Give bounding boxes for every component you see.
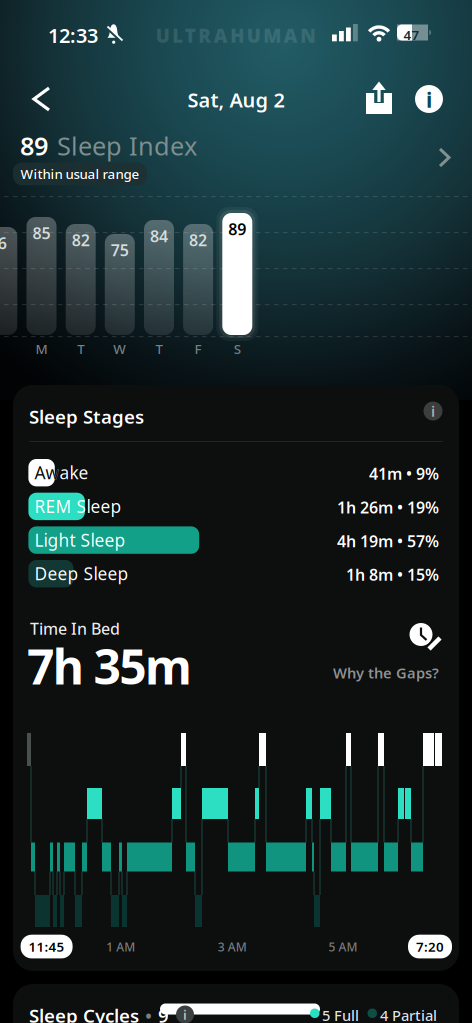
staticText: 82	[72, 229, 90, 251]
staticText: Awake	[34, 461, 88, 484]
staticText: 4h 19m • 57%	[337, 530, 439, 552]
staticText: 1h 26m • 19%	[337, 497, 439, 518]
staticText: 1 AM	[106, 939, 135, 955]
staticText: 9	[158, 1003, 169, 1023]
staticText: S	[234, 340, 241, 358]
staticText: 89	[228, 218, 246, 240]
button[interactable]: i	[415, 85, 443, 113]
staticText: Time In Bed	[30, 618, 120, 639]
staticText: Why the Gaps?	[333, 663, 439, 682]
staticText: Sleep Index	[57, 129, 197, 162]
staticText: M	[35, 340, 47, 358]
staticText: Sleep Stages	[29, 404, 144, 429]
staticText: 11:45	[29, 938, 65, 955]
staticText: 5 Full	[322, 1005, 359, 1023]
staticText: W	[113, 340, 126, 358]
staticText: 6	[0, 232, 7, 254]
staticText: 3 AM	[218, 939, 247, 955]
button[interactable]: i	[423, 401, 442, 420]
staticText: Aw	[34, 461, 59, 484]
staticText: i	[431, 401, 435, 421]
staticText: 82	[189, 229, 207, 251]
staticText: 85	[32, 222, 50, 244]
staticText: T	[155, 340, 162, 358]
button[interactable]	[16, 77, 60, 121]
staticText: 7h 35m	[27, 634, 192, 698]
staticText: i	[426, 85, 432, 114]
button[interactable]: 89	[0, 127, 472, 189]
staticText: 1h 8m • 15%	[346, 564, 439, 585]
staticText: 7:20	[416, 938, 444, 955]
staticText: 75	[111, 239, 129, 261]
staticText: 84	[150, 225, 168, 247]
staticText: 89	[20, 129, 48, 162]
staticText: Within usual range	[20, 165, 139, 183]
button[interactable]: Why the Gaps?	[239, 663, 439, 682]
staticText: 41m • 9%	[369, 463, 439, 484]
staticText: T	[77, 340, 84, 358]
staticText: 47	[403, 26, 419, 44]
button[interactable]	[361, 77, 405, 121]
staticText: ULTRAHUMAN	[156, 23, 316, 48]
button[interactable]	[406, 620, 446, 660]
staticText: 5 AM	[328, 939, 357, 955]
staticText: 4 Partial	[380, 1005, 437, 1023]
button[interactable]: i	[176, 1005, 194, 1023]
staticText: Sat, Aug 2	[187, 86, 284, 113]
staticText: •	[145, 1003, 152, 1023]
staticText: Sleep Cycles	[29, 1003, 139, 1023]
staticText: REM Sleep	[34, 495, 121, 518]
staticText: Light Sleep	[34, 528, 125, 551]
staticText: 12:33	[48, 22, 98, 49]
staticText: i	[183, 1006, 187, 1023]
staticText: F	[195, 340, 202, 358]
staticText: Deep Sleep	[34, 562, 128, 585]
